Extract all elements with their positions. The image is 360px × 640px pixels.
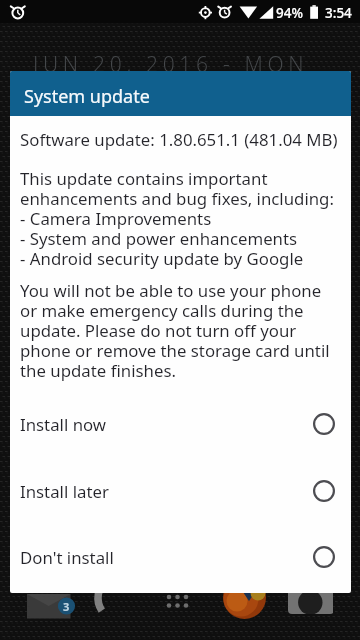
button[interactable]: Browser (223, 576, 267, 619)
staticText: Software update: 1.80.651.1 (481.04 MB) (20, 128, 338, 151)
staticText: You will not be able to use your phone o… (20, 279, 342, 382)
staticText: Don't install (20, 546, 114, 569)
button[interactable]: Install now (10, 391, 351, 457)
button[interactable]: Phone (98, 592, 138, 619)
button[interactable]: All apps (166, 594, 190, 612)
staticText: Install now (20, 413, 107, 436)
staticText: JUN 20, 2016 - MON (33, 50, 309, 79)
staticText: 3 (63, 599, 70, 614)
button[interactable]: Install later (10, 458, 351, 524)
button[interactable]: Camera (288, 585, 334, 614)
button[interactable]: Messages (27, 594, 71, 619)
staticText: 94% (276, 4, 303, 22)
staticText: This update contains important enhanceme… (20, 167, 334, 270)
button[interactable]: Don't install (10, 524, 351, 590)
staticText: 3:54 (325, 4, 352, 22)
staticText: System update (24, 84, 150, 109)
staticText: Install later (20, 480, 109, 503)
